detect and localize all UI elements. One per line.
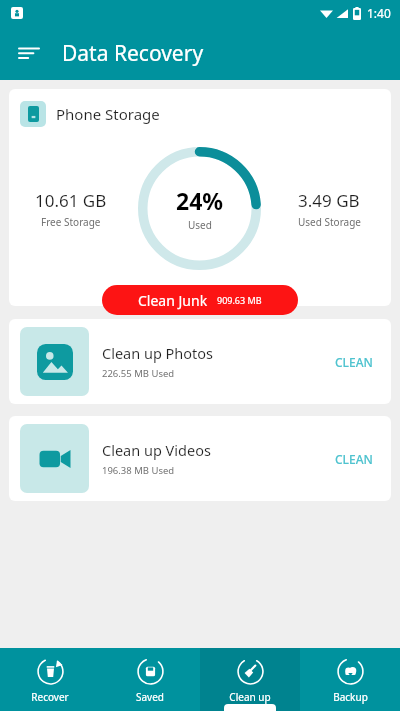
staticText: Recover <box>31 690 69 704</box>
staticText: Clean up <box>229 690 271 704</box>
staticText: 909.63 MB <box>217 294 262 306</box>
button[interactable]: Clean up Photos <box>9 319 391 404</box>
staticText: Phone Storage <box>56 104 160 124</box>
staticText: CLEAN <box>335 451 373 467</box>
staticText: Data Recovery <box>62 39 204 68</box>
staticText: 226.55 MB Used <box>102 367 175 380</box>
staticText: 1:40 <box>367 5 391 21</box>
button[interactable]: Recover <box>0 648 100 711</box>
staticText: 10.61 GB <box>35 189 107 212</box>
staticText: CLEAN <box>335 354 373 370</box>
staticText: 3.49 GB <box>298 189 360 212</box>
staticText: 24% <box>176 185 224 216</box>
button[interactable]: Saved <box>100 648 200 711</box>
button[interactable]: CLEAN <box>323 346 385 378</box>
button[interactable]: CLEAN <box>323 443 385 475</box>
staticText: Clean Junk <box>138 291 208 310</box>
staticText: Used <box>188 218 212 232</box>
staticText: Backup <box>333 690 368 704</box>
button[interactable]: Clean up <box>200 648 300 711</box>
staticText: Clean up Videos <box>102 440 211 460</box>
staticText: 196.38 MB Used <box>102 464 175 477</box>
staticText: Used Storage <box>298 215 361 229</box>
staticText: Clean up Photos <box>102 343 214 363</box>
button[interactable]: Open navigation menu <box>10 34 48 72</box>
button[interactable]: Clean Junk <box>102 285 298 315</box>
staticText: Free Storage <box>41 215 101 229</box>
staticText: Saved <box>136 690 164 704</box>
button[interactable]: Backup <box>300 648 400 711</box>
button[interactable]: Clean up Videos <box>9 416 391 501</box>
